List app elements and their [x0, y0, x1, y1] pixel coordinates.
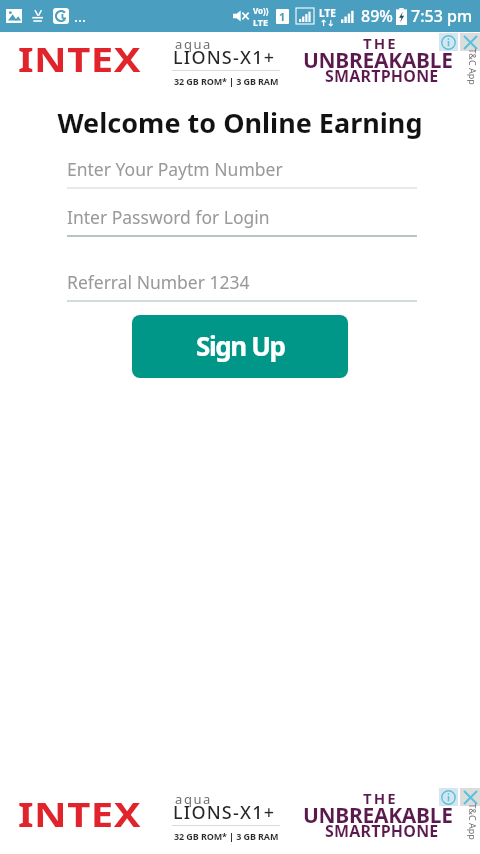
- staticText: THE: [363, 788, 398, 808]
- button[interactable]: Ad information: [439, 33, 458, 51]
- button[interactable]: Sign Up: [132, 315, 348, 378]
- staticText: T&C App: [466, 803, 478, 840]
- button[interactable]: Close ad: [460, 788, 480, 806]
- staticText: 89%: [361, 5, 393, 27]
- staticText: INTEX: [18, 36, 142, 82]
- staticText: LIONS-X1+: [173, 800, 276, 825]
- staticText: Inter Password for Login: [67, 205, 270, 229]
- staticText: LTE: [253, 16, 269, 28]
- button[interactable]: Close ad: [460, 33, 480, 51]
- staticText: 7:53 pm: [411, 5, 473, 27]
- staticText: SMARTPHONE: [325, 820, 439, 842]
- staticText: T&C App: [466, 48, 478, 85]
- button[interactable]: INTEX: [0, 787, 480, 854]
- staticText: 32 GB ROM* | 3 GB RAM: [174, 830, 279, 842]
- staticText: aqua: [175, 35, 213, 53]
- staticText: Welcome to Online Earning: [0, 104, 480, 141]
- staticText: THE: [363, 33, 398, 53]
- staticText: Vo)): [253, 5, 269, 16]
- staticText: ...: [74, 6, 87, 26]
- staticText: LTE: [319, 6, 336, 20]
- staticText: INTEX: [18, 791, 142, 837]
- staticText: LIONS-X1+: [173, 45, 276, 70]
- staticText: Enter Your Paytm Number: [67, 157, 283, 181]
- button[interactable]: INTEX: [0, 32, 480, 107]
- staticText: Referral Number 1234: [67, 270, 250, 294]
- staticText: Sign Up: [196, 328, 285, 363]
- staticText: SMARTPHONE: [325, 65, 439, 87]
- staticText: 32 GB ROM* | 3 GB RAM: [174, 75, 279, 87]
- staticText: 1: [279, 9, 286, 24]
- staticText: UNBREAKABLE: [303, 46, 453, 75]
- button[interactable]: Ad information: [439, 788, 458, 806]
- staticText: UNBREAKABLE: [303, 801, 453, 830]
- staticText: aqua: [175, 790, 213, 808]
